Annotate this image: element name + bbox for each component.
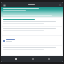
button[interactable]: More options: [58, 3, 62, 7]
button[interactable]: Search: [30, 56, 35, 62]
button[interactable]: [2, 46, 62, 55]
button[interactable]: Profile: [46, 56, 51, 62]
button[interactable]: [2, 36, 62, 45]
button[interactable]: [1, 7, 63, 17]
button[interactable]: [2, 27, 62, 35]
button[interactable]: [2, 18, 62, 26]
button[interactable]: Menu: [2, 3, 6, 7]
button[interactable]: Home: [13, 56, 18, 62]
